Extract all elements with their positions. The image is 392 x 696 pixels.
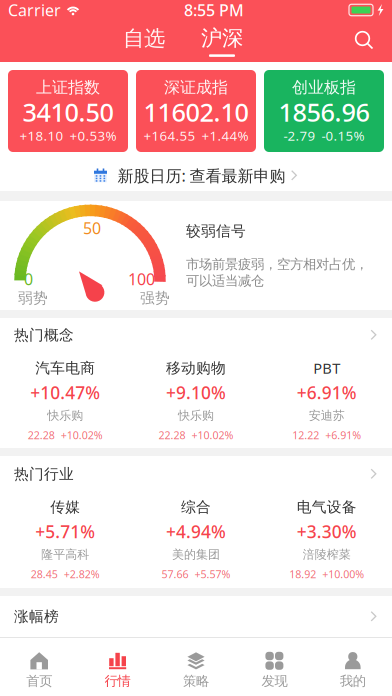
button[interactable]: 行情 bbox=[78, 637, 157, 696]
staticText: 热门行业 bbox=[14, 465, 74, 483]
staticText: +1.44% bbox=[201, 127, 248, 144]
staticText: 我的 bbox=[340, 673, 366, 689]
staticText: 市场前景疲弱，空方相对占优，可以适当减仓 bbox=[186, 256, 368, 289]
staticText: -0.15% bbox=[321, 127, 364, 144]
staticText: 涨幅榜 bbox=[14, 607, 59, 625]
staticText: 隆平高科 bbox=[41, 547, 89, 562]
staticText: 11602.10 bbox=[143, 95, 248, 129]
staticText: +18.10 bbox=[19, 127, 63, 144]
staticText: 57.66 +5.57% bbox=[161, 567, 230, 581]
staticText: 上证指数 bbox=[36, 78, 100, 97]
button[interactable]: 热门概念 bbox=[0, 314, 392, 356]
staticText: +10.47% bbox=[30, 381, 100, 404]
button[interactable]: 汽车电商 bbox=[0, 356, 131, 444]
staticText: 美的集团 bbox=[172, 547, 220, 562]
staticText: +0.53% bbox=[69, 127, 116, 144]
staticText: PBT bbox=[313, 358, 340, 378]
staticText: +5.71% bbox=[35, 520, 95, 543]
staticText: 沪深 bbox=[201, 25, 243, 51]
staticText: 深证成指 bbox=[164, 78, 228, 97]
staticText: 自选 bbox=[123, 25, 165, 52]
staticText: 8:55 PM bbox=[184, 0, 244, 21]
staticText: +164.55 bbox=[143, 127, 195, 144]
staticText: 传媒 bbox=[50, 498, 80, 516]
staticText: +9.10% bbox=[166, 381, 226, 404]
staticText: 快乐购 bbox=[47, 408, 83, 423]
button[interactable]: 涨幅榜 bbox=[0, 595, 392, 637]
staticText: Carrier bbox=[8, 0, 61, 21]
button[interactable]: 我的 bbox=[314, 637, 392, 696]
staticText: -2.79 bbox=[283, 127, 315, 144]
staticText: 电气设备 bbox=[297, 498, 357, 516]
button[interactable]: 策略 bbox=[157, 637, 235, 696]
staticText: 首页 bbox=[26, 673, 52, 689]
staticText: 热门概念 bbox=[14, 326, 74, 344]
staticText: 22.28 +10.02% bbox=[158, 428, 233, 442]
staticText: 移动购物 bbox=[166, 359, 226, 377]
button[interactable]: 上证指数 bbox=[8, 70, 128, 152]
staticText: 涪陵榨菜 bbox=[303, 547, 351, 562]
button[interactable]: PBT bbox=[261, 356, 392, 444]
staticText: 综合 bbox=[181, 498, 211, 516]
button[interactable]: 新股日历: 查看最新申购 bbox=[0, 160, 392, 191]
staticText: 汽车电商 bbox=[35, 359, 95, 377]
staticText: 0 bbox=[24, 268, 33, 290]
staticText: +6.91% bbox=[297, 381, 357, 404]
staticText: 12.22 +6.91% bbox=[292, 428, 361, 442]
button[interactable]: 电气设备 bbox=[261, 495, 392, 583]
button[interactable]: 自选 bbox=[105, 20, 183, 62]
staticText: 较弱信号 bbox=[186, 222, 246, 240]
button[interactable]: 发现 bbox=[235, 637, 314, 696]
staticText: 策略 bbox=[183, 673, 209, 689]
staticText: 1856.96 bbox=[278, 95, 369, 129]
button[interactable]: 首页 bbox=[0, 637, 78, 696]
staticText: 创业板指 bbox=[292, 78, 356, 97]
staticText: +3.30% bbox=[297, 520, 357, 543]
staticText: 弱势 bbox=[18, 289, 48, 307]
staticText: 发现 bbox=[261, 673, 287, 689]
staticText: 安迪苏 bbox=[309, 408, 345, 423]
button[interactable]: Search bbox=[354, 20, 380, 62]
staticText: 快乐购 bbox=[178, 408, 214, 423]
button[interactable]: 深证成指 bbox=[136, 70, 256, 152]
staticText: +4.94% bbox=[166, 520, 226, 543]
button[interactable]: 移动购物 bbox=[131, 356, 261, 444]
staticText: 50 bbox=[83, 217, 101, 239]
button[interactable]: 综合 bbox=[131, 495, 261, 583]
button[interactable]: 热门行业 bbox=[0, 453, 392, 495]
button[interactable]: 沪深 bbox=[183, 20, 261, 62]
staticText: 强势 bbox=[140, 289, 170, 307]
staticText: 100 bbox=[128, 268, 155, 290]
button[interactable]: 创业板指 bbox=[264, 70, 384, 152]
staticText: 28.45 +2.82% bbox=[31, 567, 100, 581]
staticText: 3410.50 bbox=[22, 95, 113, 129]
staticText: 行情 bbox=[105, 673, 131, 689]
button[interactable]: 传媒 bbox=[0, 495, 131, 583]
staticText: 新股日历: 查看最新申购 bbox=[107, 165, 290, 186]
staticText: 22.28 +10.02% bbox=[28, 428, 103, 442]
staticText: 18.92 +10.00% bbox=[289, 567, 364, 581]
